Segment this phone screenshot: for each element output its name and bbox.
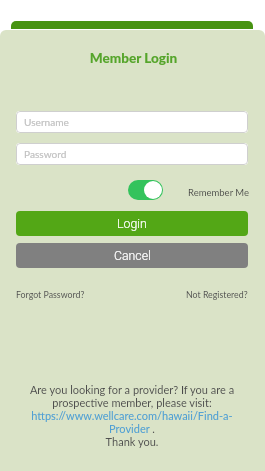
button[interactable]: Password	[16, 143, 248, 165]
staticText: Username	[24, 116, 69, 128]
staticText: Remember Me	[188, 187, 250, 198]
staticText: Cancel	[114, 249, 151, 263]
button[interactable]: Login	[16, 211, 248, 236]
button[interactable]: Cancel	[16, 243, 248, 268]
button[interactable]	[128, 180, 163, 200]
staticText: Not Registered?	[186, 289, 248, 300]
staticText: Member Login	[1, 50, 265, 66]
staticText: Are you looking for a provider? If you a…	[21, 383, 243, 448]
button[interactable]: Username	[16, 111, 248, 133]
staticText: Login	[117, 217, 147, 231]
button[interactable]: Forgot Password?	[16, 289, 85, 300]
staticText: Forgot Password?	[16, 289, 85, 300]
staticText: Password	[24, 148, 67, 160]
button[interactable]: Not Registered?	[186, 289, 248, 300]
